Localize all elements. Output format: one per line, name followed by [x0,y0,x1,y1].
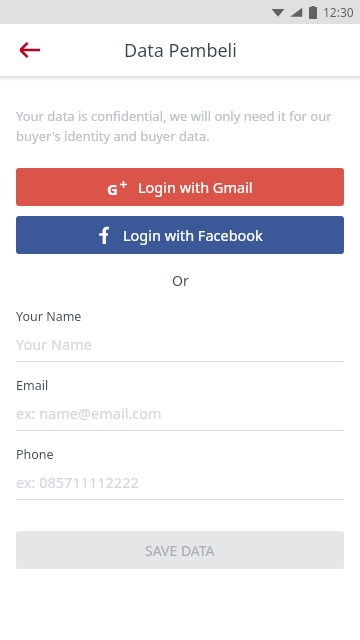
button[interactable]: Back [8,28,52,72]
staticText: Your Name [16,334,92,354]
staticText: Data Pembeli [124,38,237,63]
staticText: ex: name@email.com [16,403,162,423]
staticText: Email [16,377,49,394]
button[interactable]: Login with Facebook [16,216,344,254]
staticText: SAVE DATA [145,541,215,560]
button[interactable]: SAVE DATA [16,531,344,569]
staticText: Login with Facebook [123,225,263,245]
staticText: Login with Gmail [138,177,253,197]
button[interactable]: G [16,168,344,206]
staticText: Or [172,271,189,290]
staticText: 12:30 [323,4,354,20]
staticText: Your Name [16,308,82,325]
staticText: Your data is confidential, we will only … [16,107,344,145]
staticText: Phone [16,446,54,463]
staticText: ex: 085711112222 [16,472,139,492]
staticText: G [107,179,118,195]
